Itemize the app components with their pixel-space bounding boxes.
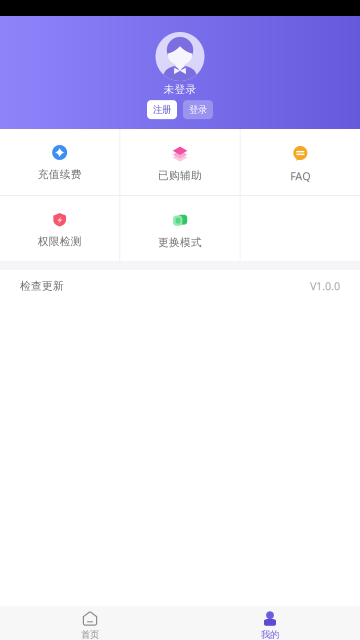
staticText: 更换模式 — [158, 236, 202, 249]
button[interactable]: FAQ — [241, 129, 360, 195]
staticText: 充值续费 — [38, 168, 82, 181]
staticText: V1.0.0 — [310, 279, 340, 293]
staticText: FAQ — [290, 169, 310, 183]
button[interactable]: 充值续费 — [0, 129, 119, 195]
button[interactable]: 首页 — [0, 606, 180, 640]
button[interactable]: 检查更新 — [0, 270, 360, 302]
staticText: 未登录 — [163, 83, 196, 96]
staticText: 登录 — [189, 104, 207, 115]
staticText: 已购辅助 — [158, 169, 202, 182]
staticText: 首页 — [81, 629, 99, 640]
button[interactable]: 权限检测 — [0, 196, 119, 261]
staticText: 我的 — [261, 629, 279, 640]
button[interactable]: 我的 — [180, 606, 360, 640]
staticText: 检查更新 — [20, 279, 64, 292]
button[interactable]: 已购辅助 — [120, 129, 240, 195]
staticText: 注册 — [153, 104, 171, 115]
staticText: 权限检测 — [38, 235, 82, 248]
button[interactable]: 登录 — [183, 100, 213, 119]
button[interactable]: 更换模式 — [120, 196, 240, 261]
button[interactable]: 注册 — [147, 100, 177, 119]
